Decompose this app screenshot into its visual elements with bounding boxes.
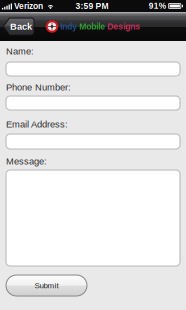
- staticText: 91%: [149, 1, 166, 11]
- button[interactable]: Back: [3, 18, 34, 35]
- staticText: Email Address:: [6, 119, 68, 127]
- staticText: Indy: [60, 22, 77, 31]
- staticText: Verizon: [14, 1, 43, 11]
- staticText: Name:: [6, 46, 34, 54]
- staticText: Designs: [107, 22, 140, 31]
- staticText: Submit: [34, 281, 58, 290]
- staticText: Message:: [6, 156, 47, 164]
- button[interactable]: Submit: [6, 275, 87, 296]
- staticText: 3:59 PM: [75, 1, 108, 11]
- staticText: Back: [10, 21, 32, 32]
- staticText: Phone Number:: [6, 82, 71, 90]
- staticText: Mobile: [79, 22, 105, 31]
